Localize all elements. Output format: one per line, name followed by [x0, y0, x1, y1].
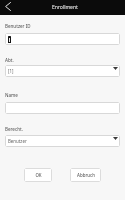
staticText: Abt.: [5, 57, 14, 63]
staticText: Berecht.: [5, 126, 23, 132]
staticText: Benutzer ID: [5, 23, 31, 29]
button[interactable]: [5, 33, 120, 45]
staticText: Enrollment: [52, 4, 78, 11]
button[interactable]: Back: [1, 0, 14, 15]
button[interactable]: [5, 102, 120, 114]
button[interactable]: OK: [24, 168, 52, 182]
staticText: [1]: [8, 68, 14, 74]
button[interactable]: [1]: [5, 65, 120, 77]
staticText: Abbruch: [77, 172, 95, 178]
staticText: Benutzer: [8, 138, 27, 144]
staticText: Name: [5, 92, 18, 98]
staticText: OK: [35, 172, 42, 178]
button[interactable]: Benutzer: [5, 135, 120, 147]
button[interactable]: Abbruch: [70, 168, 101, 182]
